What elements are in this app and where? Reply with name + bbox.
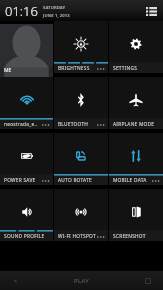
button[interactable]: ME [0,21,53,77]
staticText: ME [4,67,12,74]
staticText: SETTINGS [113,65,138,72]
staticText: AIRPLANE MODE [113,121,155,128]
button[interactable]: AUTO ROTATE [54,133,108,189]
button[interactable]: SOUND PROFILE [0,189,53,245]
staticText: SOUND PROFILE [4,233,45,240]
button[interactable]: BRIGHTNESS [54,21,108,77]
staticText: neostrada_e.. [4,121,38,128]
staticText: JUNE 1, 2013 [43,13,70,19]
button[interactable]: BLUETOOTH [54,77,108,133]
button[interactable]: SCREENSHOT [109,189,163,245]
staticText: AUTO ROTATE [58,177,92,184]
button[interactable]: WI-FI HOTSPOT [54,189,108,245]
staticText: SATURDAY [43,5,66,11]
button[interactable]: MOBILE DATA [109,133,163,189]
button[interactable]: neostrada_e.. [0,77,53,133]
staticText: 01:16 [5,2,38,20]
staticText: BRIGHTNESS [58,65,90,72]
button[interactable]: AIRPLANE MODE [109,77,163,133]
button[interactable]: Recent apps [133,271,163,290]
staticText: MOBILE DATA [113,177,147,184]
button[interactable]: SETTINGS [109,21,163,77]
button[interactable]: Back [0,271,30,290]
staticText: BLUETOOTH [58,121,89,128]
button[interactable]: PLAY [30,271,133,290]
staticText: POWER SAVE [4,177,36,184]
button[interactable]: POWER SAVE [0,133,53,189]
button[interactable]: Notifications [143,0,160,21]
staticText: SCREENSHOT [113,233,146,240]
staticText: PLAY [74,277,89,285]
staticText: WI-FI HOTSPOT [58,233,96,240]
